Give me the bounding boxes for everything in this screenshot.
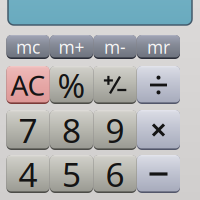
staticText: % <box>57 63 85 107</box>
staticText: m- <box>104 35 126 58</box>
staticText: 5 <box>62 152 81 196</box>
button[interactable]: mr <box>137 35 180 59</box>
staticText: 7 <box>18 108 37 152</box>
button[interactable]: 6 <box>93 155 136 193</box>
button[interactable]: 9 <box>93 110 136 150</box>
button[interactable]: Minus <box>137 155 180 193</box>
button[interactable]: AC <box>6 66 49 104</box>
button[interactable]: 7 <box>6 110 49 150</box>
staticText: 9 <box>105 108 124 152</box>
button[interactable]: m+ <box>50 35 93 59</box>
staticText: 6 <box>105 152 124 196</box>
button[interactable]: Multiply <box>137 110 180 150</box>
button[interactable]: mc <box>6 35 49 59</box>
staticText: AC <box>10 66 45 104</box>
button[interactable]: Divide <box>137 66 180 104</box>
staticText: mc <box>16 35 40 58</box>
button[interactable]: m- <box>93 35 136 59</box>
button[interactable]: Plus minus <box>93 66 136 104</box>
button[interactable]: 8 <box>50 110 93 150</box>
staticText: 8 <box>62 108 81 152</box>
button[interactable]: 5 <box>50 155 93 193</box>
staticText: 4 <box>18 152 37 196</box>
staticText: m+ <box>58 35 84 58</box>
staticText: mr <box>147 35 170 58</box>
button[interactable]: % <box>50 66 93 104</box>
button[interactable]: 4 <box>6 155 49 193</box>
